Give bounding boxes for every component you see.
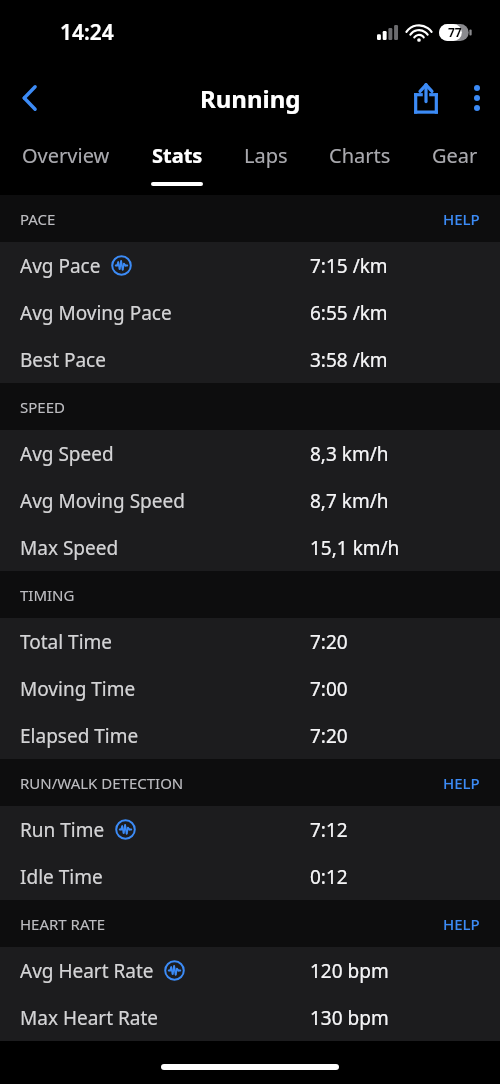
button[interactable]: Overview (14, 130, 118, 195)
button[interactable]: Best Pace (0, 336, 500, 383)
button[interactable]: HELP (423, 900, 500, 947)
button[interactable]: Max Heart Rate (0, 994, 500, 1041)
staticText: 7:12 (310, 817, 348, 843)
button[interactable]: More options (454, 66, 500, 130)
staticText: 120 bpm (310, 958, 389, 984)
staticText: 77 (448, 24, 462, 40)
staticText: Elapsed Time (20, 723, 139, 749)
staticText: 7:15 /km (310, 253, 388, 279)
button[interactable]: Elapsed Time (0, 712, 500, 759)
staticText: Avg Heart Rate (20, 958, 154, 984)
button[interactable]: Max Speed (0, 524, 500, 571)
button[interactable]: HELP (423, 195, 500, 242)
button[interactable]: Avg Pace (0, 242, 500, 289)
staticText: Avg Pace (20, 253, 101, 279)
staticText: Moving Time (20, 676, 136, 702)
button[interactable]: Gear (424, 130, 486, 195)
staticText: Run Time (20, 817, 105, 843)
staticText: RUN/WALK DETECTION (20, 773, 184, 793)
button[interactable]: Run Time (0, 806, 500, 853)
staticText: Total Time (20, 629, 113, 655)
staticText: 14:24 (60, 18, 114, 47)
staticText: 0:12 (310, 864, 348, 890)
staticText: Idle Time (20, 864, 103, 890)
staticText: Stats (152, 142, 203, 169)
staticText: Max Heart Rate (20, 1005, 159, 1031)
staticText: Charts (329, 142, 391, 169)
staticText: HELP (443, 773, 480, 793)
staticText: Gear (432, 142, 478, 169)
staticText: 3:58 /km (310, 347, 388, 373)
staticText: 8,7 km/h (310, 488, 389, 514)
staticText: Avg Moving Speed (20, 488, 185, 514)
staticText: HELP (443, 914, 480, 934)
staticText: Overview (22, 142, 110, 169)
staticText: TIMING (20, 585, 75, 605)
staticText: Avg Moving Pace (20, 300, 172, 326)
button[interactable]: Share (398, 66, 454, 130)
staticText: SPEED (20, 397, 65, 417)
staticText: 7:00 (310, 676, 348, 702)
button[interactable]: Laps (236, 130, 296, 195)
staticText: Avg Speed (20, 441, 114, 467)
button[interactable]: Avg Speed (0, 430, 500, 477)
staticText: 8,3 km/h (310, 441, 389, 467)
staticText: 7:20 (310, 723, 348, 749)
button[interactable]: Avg Moving Speed (0, 477, 500, 524)
button[interactable]: Charts (321, 130, 399, 195)
button[interactable]: Moving Time (0, 665, 500, 712)
staticText: Max Speed (20, 535, 119, 561)
staticText: HELP (443, 209, 480, 229)
button[interactable]: Stats (143, 130, 211, 195)
button[interactable]: Back (0, 66, 60, 130)
button[interactable]: Total Time (0, 618, 500, 665)
button[interactable]: Avg Moving Pace (0, 289, 500, 336)
staticText: Best Pace (20, 347, 106, 373)
button[interactable]: Idle Time (0, 853, 500, 900)
staticText: PACE (20, 209, 56, 229)
staticText: HEART RATE (20, 914, 106, 934)
button[interactable]: HELP (423, 759, 500, 806)
button[interactable]: Avg Heart Rate (0, 947, 500, 994)
staticText: 130 bpm (310, 1005, 389, 1031)
staticText: 15,1 km/h (310, 535, 400, 561)
staticText: Running (200, 82, 301, 115)
staticText: 6:55 /km (310, 300, 388, 326)
staticText: Laps (244, 142, 288, 169)
staticText: 7:20 (310, 629, 348, 655)
